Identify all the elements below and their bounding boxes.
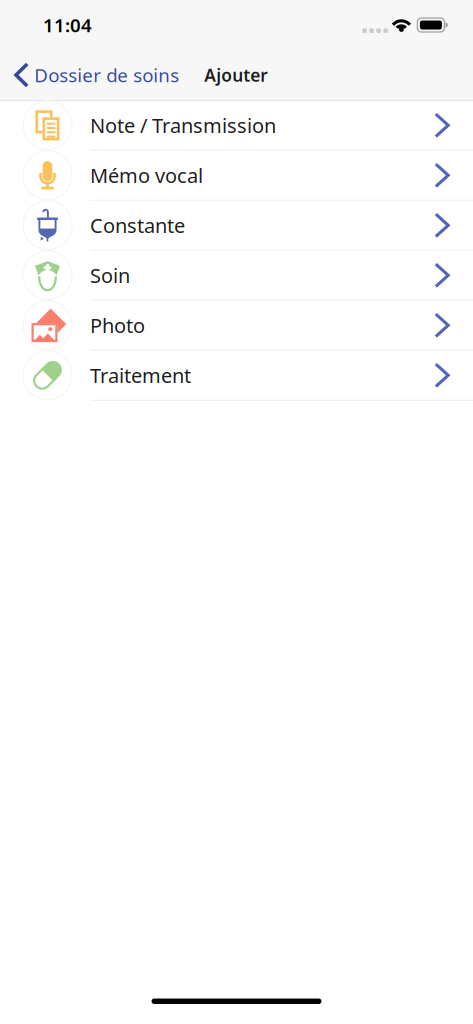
button[interactable]: Soin [0,251,473,301]
button[interactable]: Mémo vocal [0,151,473,201]
staticText: Dossier de soins [34,63,179,87]
staticText: Traitement [90,362,191,389]
button[interactable]: Dossier de soins [0,50,185,100]
button[interactable]: Photo [0,301,473,351]
staticText: Soin [90,262,130,289]
button[interactable]: Note / Transmission [0,101,473,151]
staticText: Photo [90,312,145,339]
button[interactable]: Traitement [0,351,473,401]
staticText: Mémo vocal [90,162,203,189]
staticText: 11:04 [43,13,92,37]
button[interactable]: Constante [0,201,473,251]
staticText: Constante [90,212,185,239]
staticText: Ajouter [204,63,268,86]
staticText: Note / Transmission [90,112,276,139]
